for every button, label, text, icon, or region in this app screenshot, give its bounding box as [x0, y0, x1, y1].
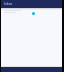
button[interactable]: [4, 10, 62, 13]
button[interactable]: Inbox: [1, 0, 62, 8]
button[interactable]: Add: [32, 12, 35, 15]
staticText: Inbox: [4, 2, 13, 6]
